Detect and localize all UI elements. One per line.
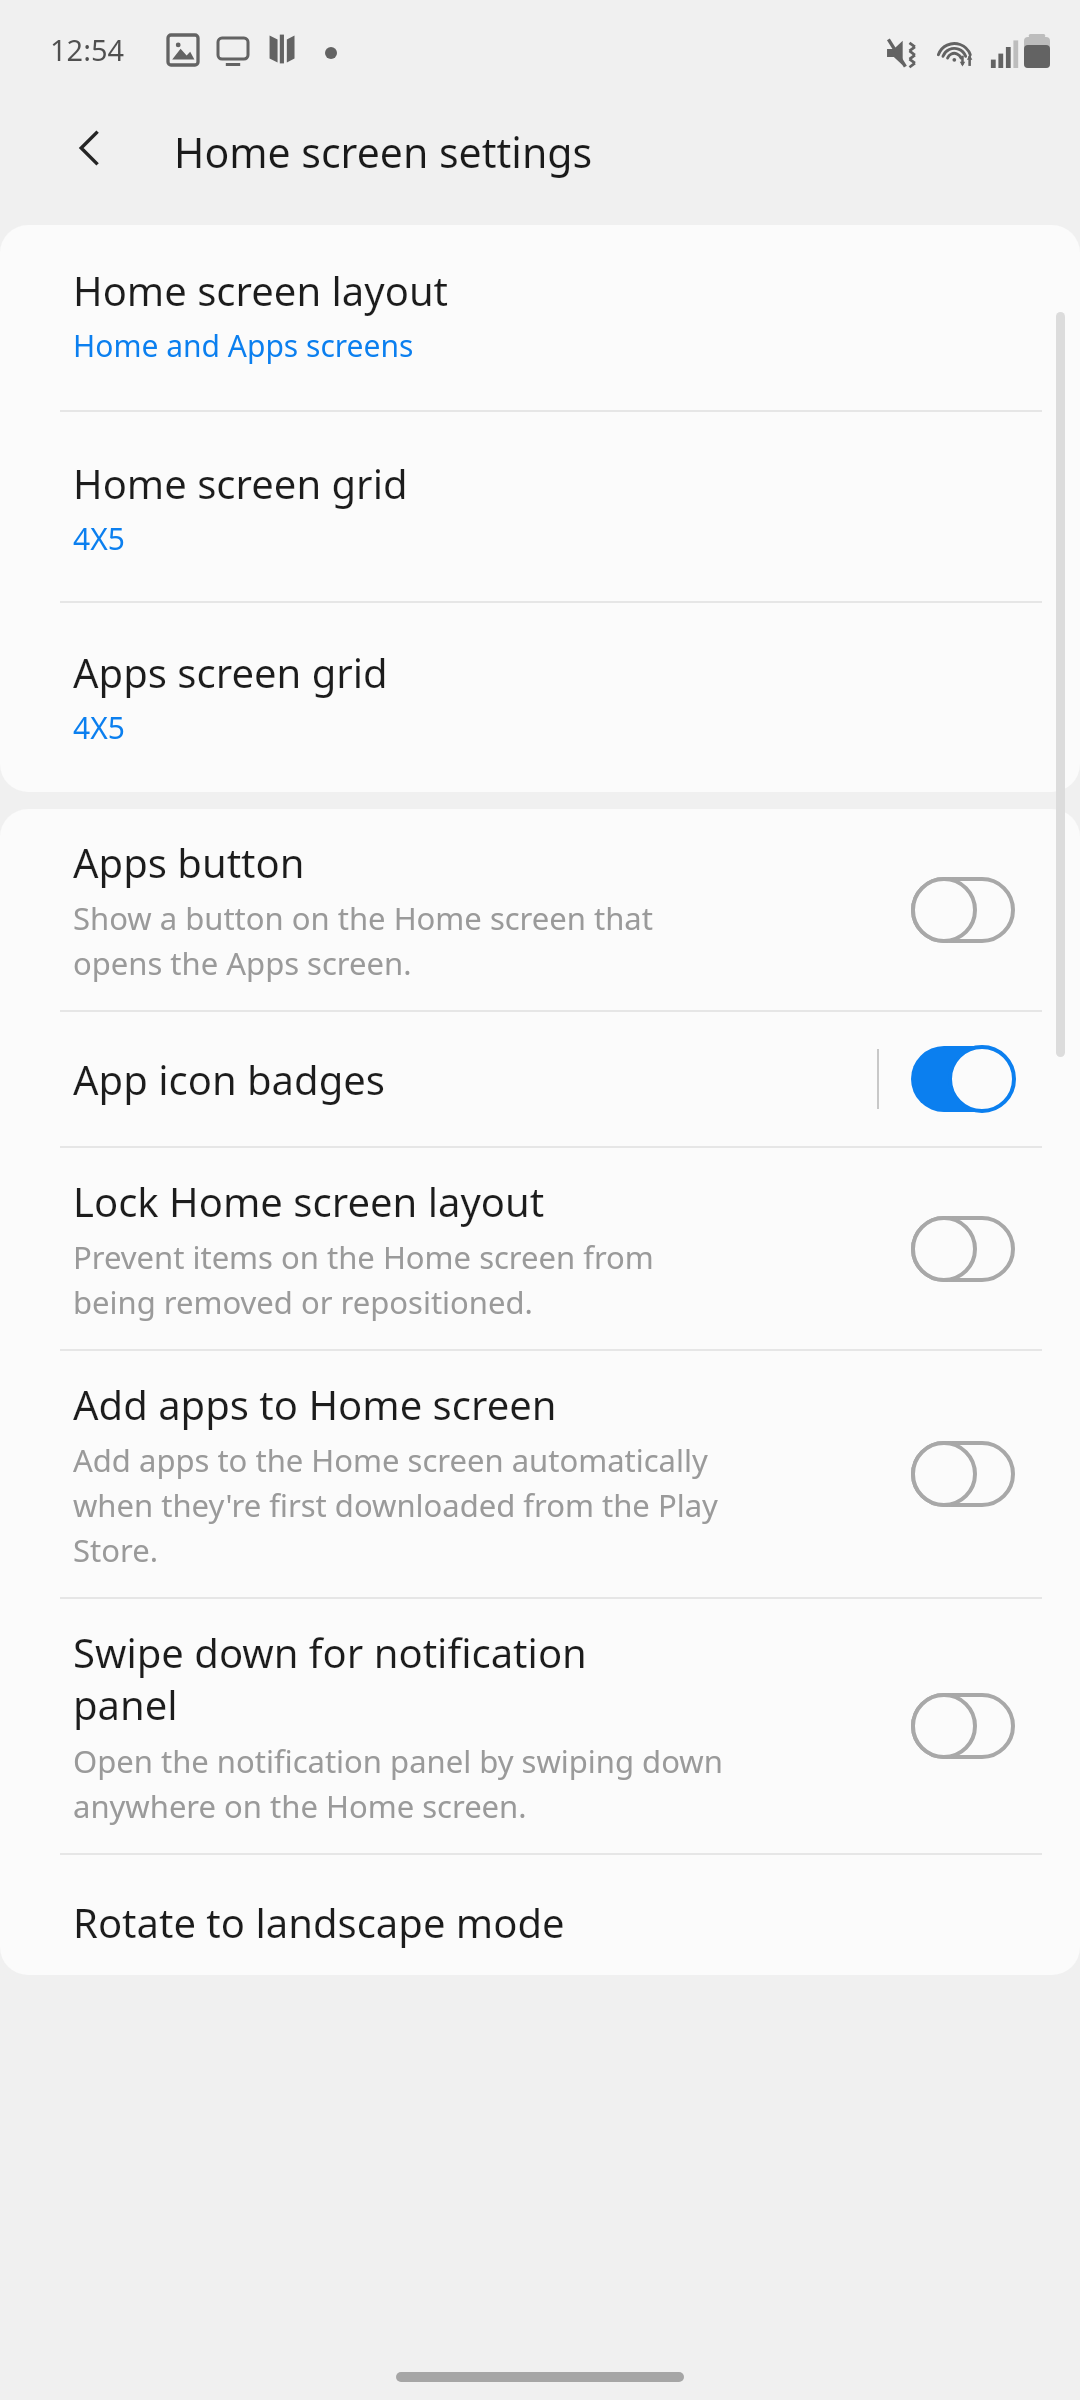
staticText: Home screen grid: [73, 456, 408, 510]
staticText: 4X5: [73, 518, 125, 559]
button[interactable]: Add apps to Home screen: [0, 1351, 1080, 1597]
staticText: Show a button on the Home screen that op…: [73, 897, 653, 984]
button[interactable]: [911, 1216, 1015, 1282]
staticText: Open the notification panel by swiping d…: [73, 1740, 723, 1827]
staticText: App icon badges: [73, 1052, 385, 1106]
staticText: 4X5: [73, 707, 125, 748]
button[interactable]: Back: [48, 106, 132, 190]
button[interactable]: [911, 1441, 1015, 1507]
staticText: Home and Apps screens: [73, 325, 414, 366]
staticText: Home screen settings: [174, 124, 593, 180]
button[interactable]: Swipe down for notification panel: [0, 1599, 1080, 1853]
staticText: Apps button: [73, 835, 305, 889]
staticText: Home screen layout: [73, 263, 449, 317]
staticText: Swipe down for notification panel: [73, 1625, 587, 1732]
button[interactable]: Home screen layout: [0, 263, 1080, 366]
button[interactable]: Apps button: [0, 809, 1080, 1010]
button[interactable]: Home screen grid: [0, 456, 1080, 559]
button[interactable]: [911, 1693, 1015, 1759]
button[interactable]: [911, 1046, 1015, 1112]
staticText: Apps screen grid: [73, 645, 388, 699]
staticText: Lock Home screen layout: [73, 1174, 545, 1228]
button[interactable]: [911, 877, 1015, 943]
staticText: Add apps to the Home screen automaticall…: [73, 1439, 718, 1571]
button[interactable]: App icon badges: [0, 1012, 1080, 1146]
staticText: Add apps to Home screen: [73, 1377, 557, 1431]
button[interactable]: Apps screen grid: [0, 645, 1080, 748]
staticText: Prevent items on the Home screen from be…: [73, 1236, 654, 1323]
staticText: Rotate to landscape mode: [73, 1895, 565, 1949]
staticText: 12:54: [50, 30, 125, 69]
button[interactable]: Lock Home screen layout: [0, 1148, 1080, 1349]
button[interactable]: Rotate to landscape mode: [0, 1855, 1080, 1975]
